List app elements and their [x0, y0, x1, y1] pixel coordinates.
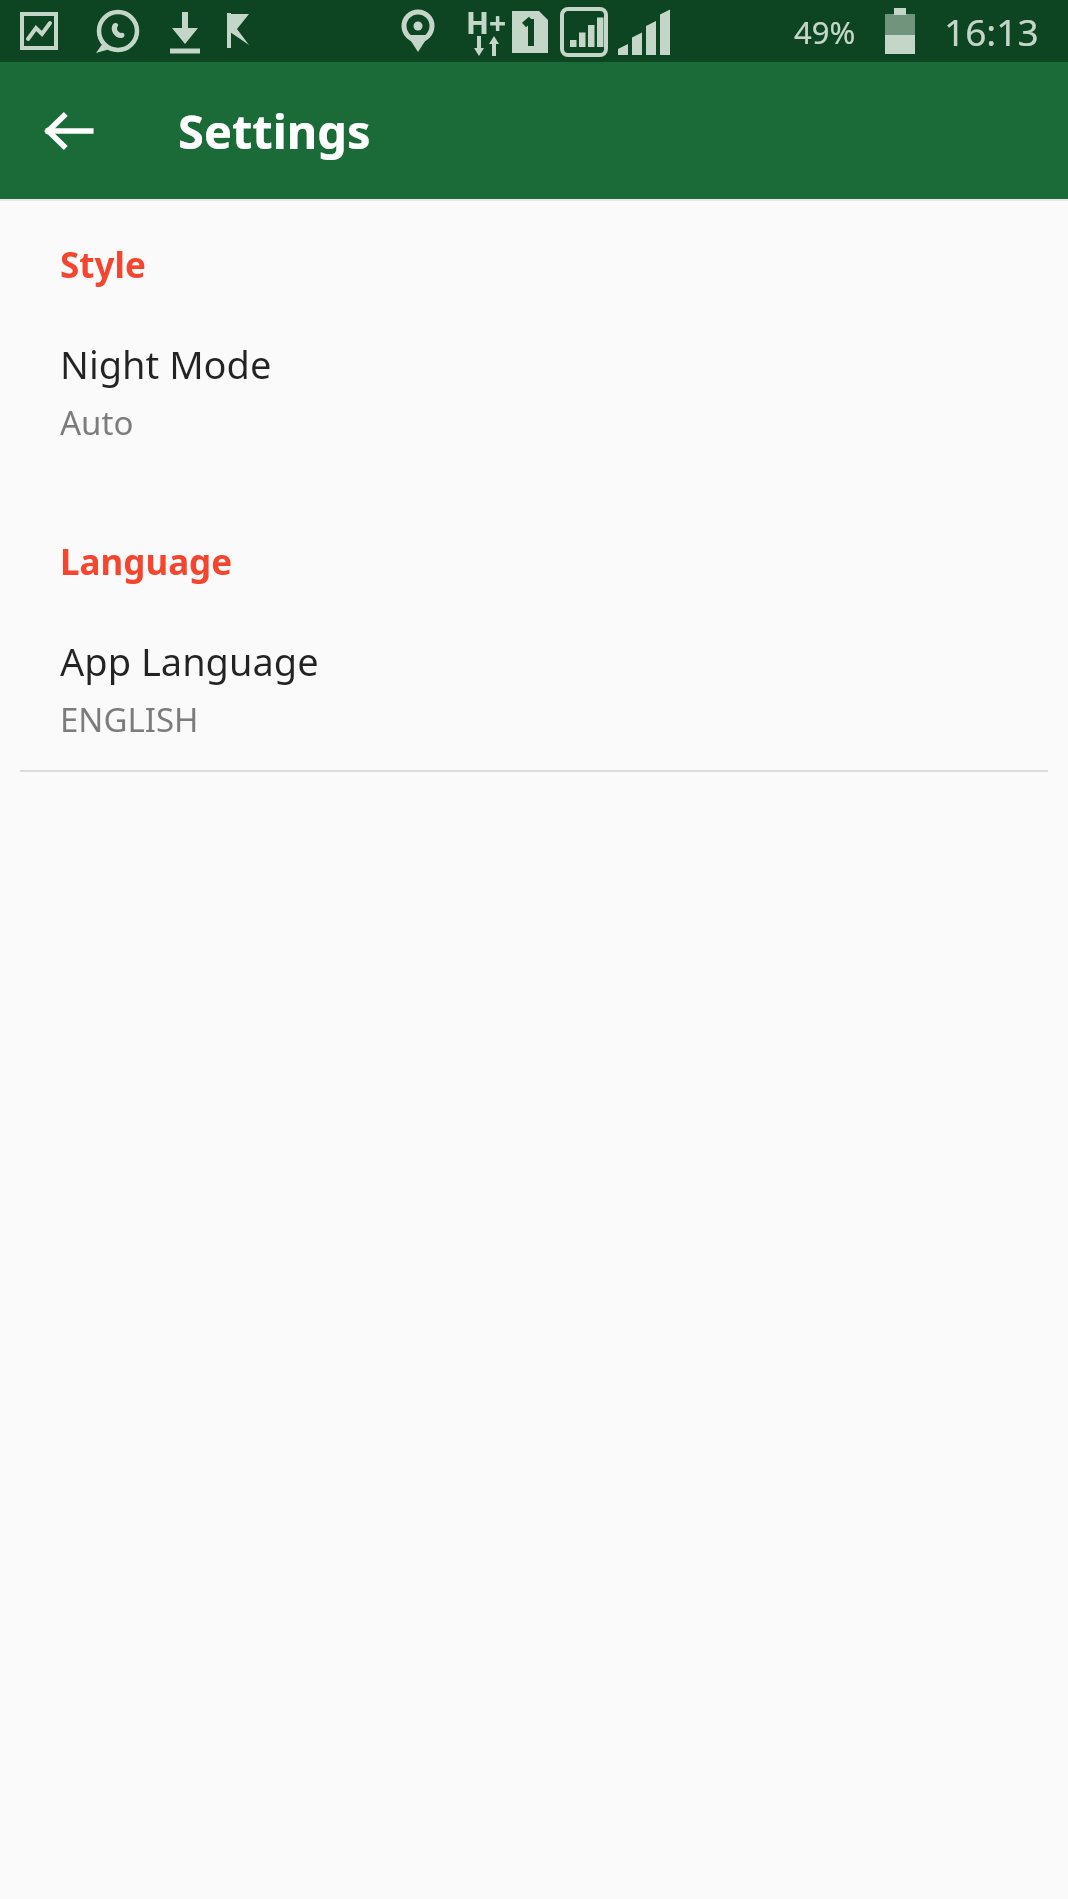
- staticText: 16:13: [944, 6, 1039, 56]
- staticText: Auto: [60, 400, 134, 445]
- staticText: Language: [60, 538, 233, 586]
- staticText: App Language: [60, 635, 319, 687]
- button[interactable]: Language: [0, 538, 1068, 586]
- staticText: ENGLISH: [60, 697, 199, 742]
- staticText: Settings: [178, 99, 371, 163]
- staticText: Style: [60, 241, 146, 289]
- button[interactable]: App Language: [0, 635, 1068, 742]
- button[interactable]: Style: [0, 241, 1068, 289]
- button[interactable]: Night Mode: [0, 338, 1068, 445]
- button[interactable]: Back: [26, 88, 112, 174]
- staticText: H+: [466, 2, 507, 43]
- staticText: 49%: [794, 11, 856, 53]
- staticText: Night Mode: [60, 338, 272, 390]
